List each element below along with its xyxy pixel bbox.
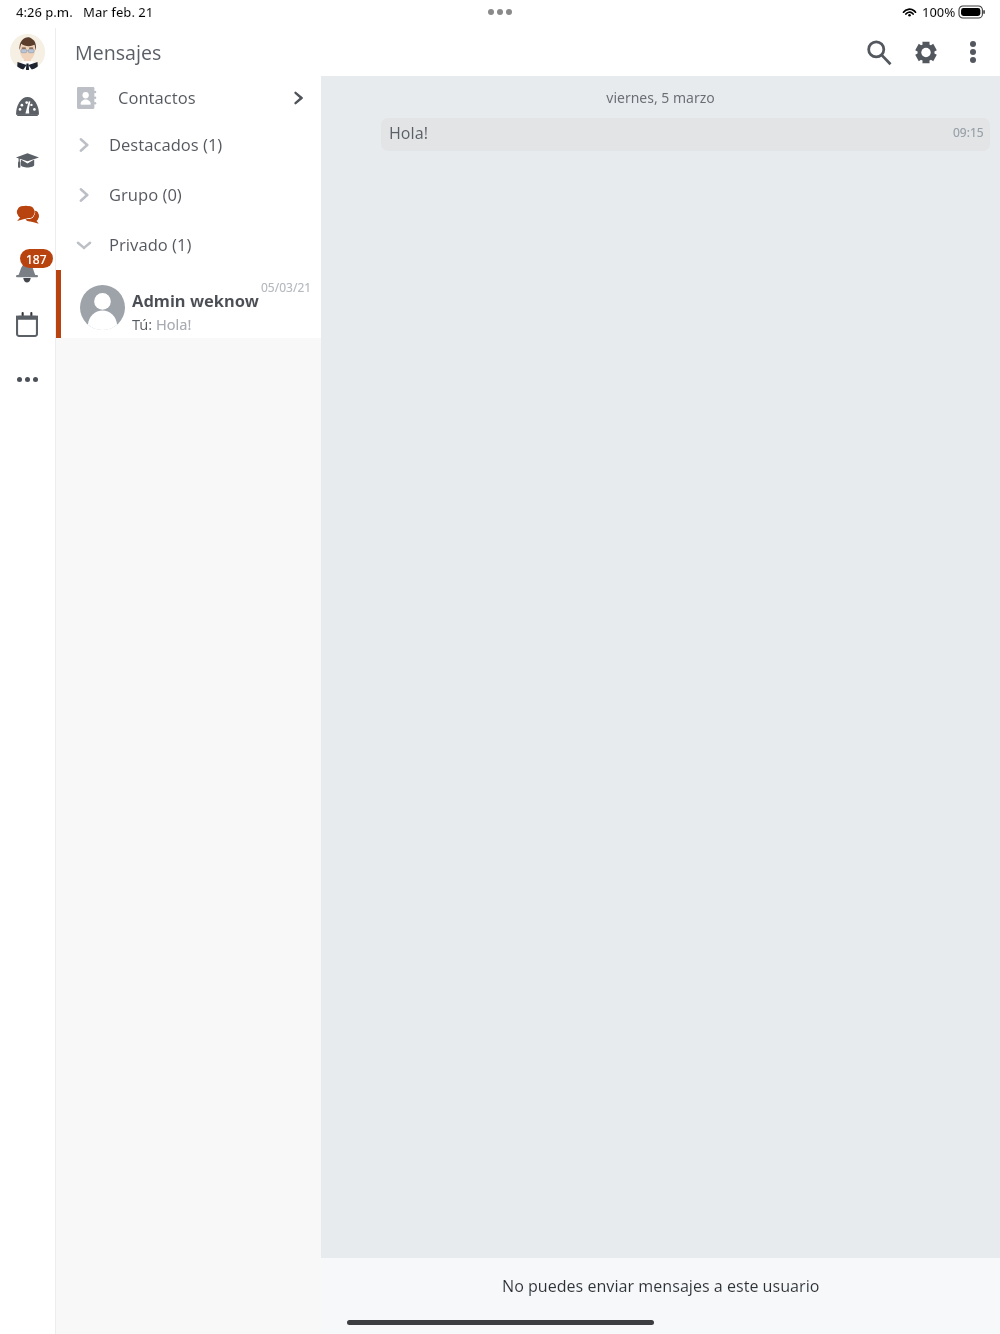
staticText: Destacados (1) xyxy=(109,133,223,155)
staticText: viernes, 5 marzo xyxy=(321,88,1000,107)
button[interactable]: Destacados (1) xyxy=(56,120,321,170)
button[interactable]: More xyxy=(12,371,43,387)
button[interactable]: Privado (1) xyxy=(56,220,321,270)
staticText: No puedes enviar mensajes a este usuario xyxy=(502,1275,820,1297)
button[interactable]: Notifications xyxy=(5,248,50,290)
staticText: Tú: xyxy=(132,314,153,334)
staticText: 100% xyxy=(922,3,956,21)
staticText: Mensajes xyxy=(75,39,162,66)
button[interactable]: Messages xyxy=(11,198,43,230)
staticText: Mar feb. 21 xyxy=(83,3,154,21)
button[interactable]: Dashboard xyxy=(11,90,43,122)
button[interactable]: Contactos xyxy=(56,76,321,120)
button[interactable]: Profile xyxy=(10,34,45,70)
staticText: 05/03/21 xyxy=(261,279,312,295)
staticText: Contactos xyxy=(118,86,196,108)
button[interactable]: Courses xyxy=(11,144,43,176)
button[interactable]: Admin weknow xyxy=(56,270,321,338)
button[interactable]: Search xyxy=(859,32,899,72)
staticText: 09:15 xyxy=(953,124,984,140)
staticText: Grupo (0) xyxy=(109,183,182,205)
button[interactable]: Grupo (0) xyxy=(56,170,321,220)
button[interactable]: Settings xyxy=(906,32,946,72)
staticText: Hola! xyxy=(389,122,428,144)
button[interactable]: Calendar xyxy=(11,308,43,340)
staticText: Admin weknow xyxy=(132,289,259,311)
staticText: Privado (1) xyxy=(109,233,192,255)
staticText: 187 xyxy=(26,251,47,267)
button[interactable]: More options xyxy=(953,32,993,72)
staticText: Hola! xyxy=(156,314,192,334)
staticText: 4:26 p.m. xyxy=(16,3,73,21)
